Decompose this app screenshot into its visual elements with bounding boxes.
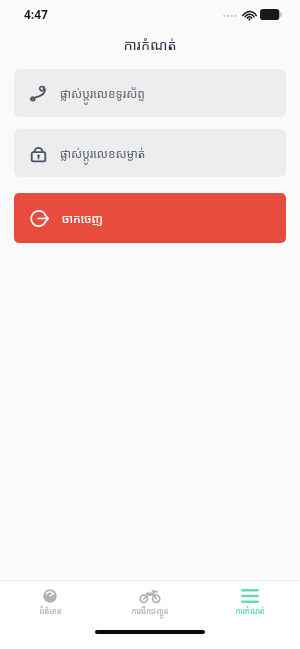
staticText: ចាកចេញ xyxy=(62,210,103,226)
button[interactable]: ផ្លាស់ប្តូរលេខសម្ងាត់ xyxy=(14,129,286,177)
button[interactable]: ផ្លាស់ប្តូរលេខទូរស័ព្ទ xyxy=(14,69,286,117)
button[interactable]: ការកំណត់ xyxy=(200,581,300,623)
button[interactable]: ចាកចេញ xyxy=(14,193,286,243)
staticText: ការកំណត់ xyxy=(123,35,177,54)
staticText: ការកំណត់ xyxy=(235,605,265,616)
button[interactable]: ព័ត៌មាន xyxy=(0,581,100,623)
staticText: ផ្លាស់ប្តូរលេខទូរស័ព្ទ xyxy=(60,85,145,101)
staticText: ព័ត៌មាន xyxy=(39,605,62,616)
button[interactable]: ការជីកជញ្ជូន xyxy=(100,581,200,623)
staticText: ផ្លាស់ប្តូរលេខសម្ងាត់ xyxy=(60,145,146,161)
staticText: ការជីកជញ្ជូន xyxy=(131,605,169,616)
staticText: 4:47 xyxy=(24,6,48,22)
